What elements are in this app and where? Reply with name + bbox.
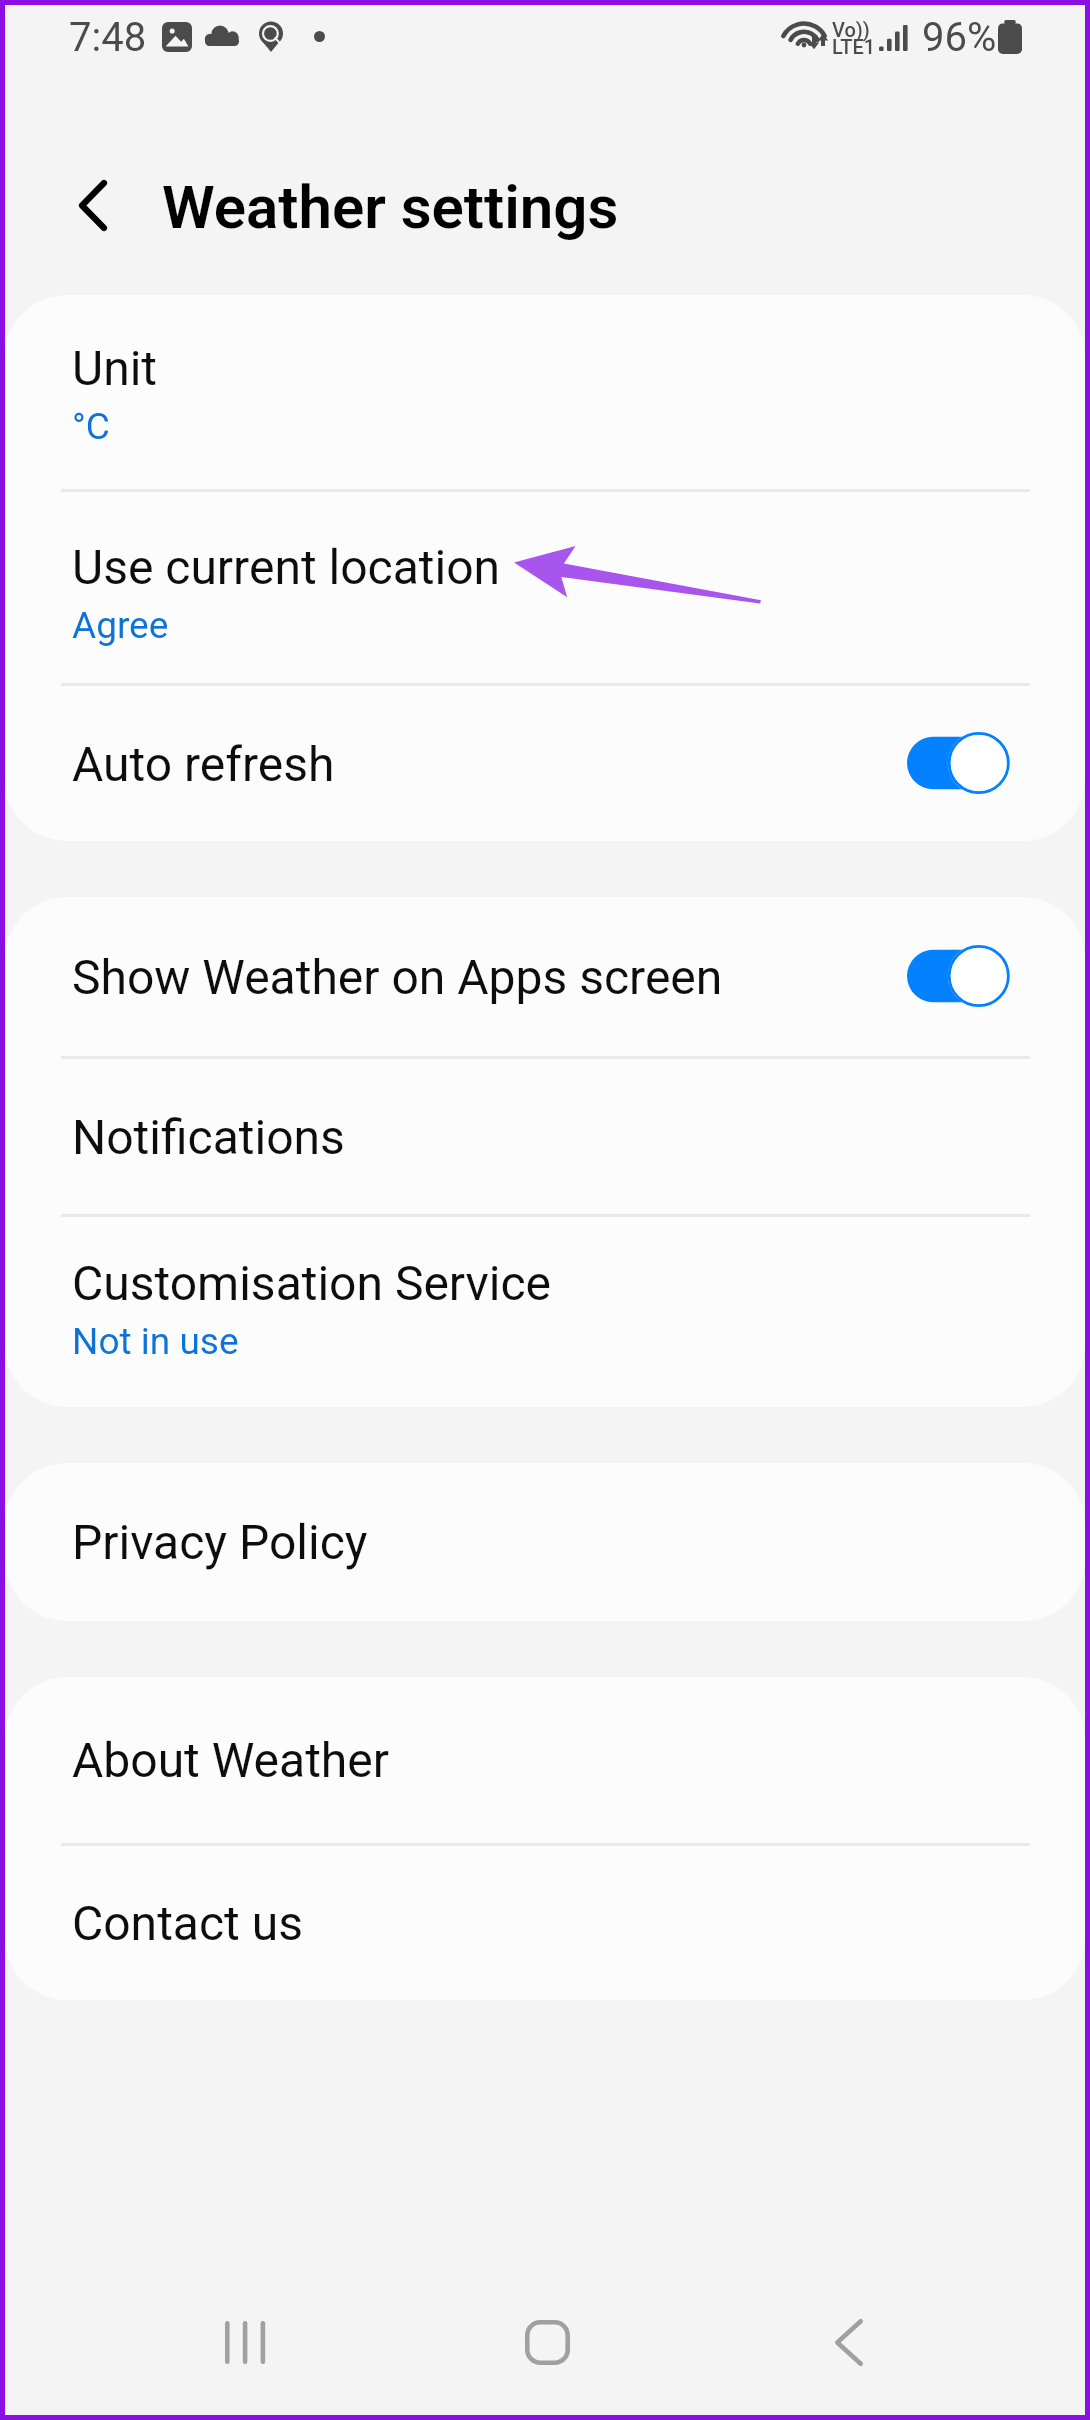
button[interactable]: About Weather	[5, 1677, 1085, 1843]
staticText: Vo))	[832, 18, 870, 41]
button[interactable]: Unit	[5, 295, 1085, 489]
staticText: Notifications	[72, 1109, 345, 1165]
staticText: Customisation Service	[72, 1255, 552, 1311]
staticText: Weather settings	[162, 172, 619, 242]
staticText: 96%	[922, 14, 997, 61]
button[interactable]: Back	[52, 155, 134, 255]
button[interactable]: Customisation Service	[5, 1217, 1085, 1407]
staticText: Privacy Policy	[72, 1514, 368, 1570]
button[interactable]: Recents	[155, 2269, 335, 2415]
button[interactable]: Contact us	[5, 1846, 1085, 2000]
staticText: About Weather	[72, 1732, 389, 1788]
button[interactable]: Use current location	[5, 492, 1085, 683]
staticText: Use current location	[72, 539, 501, 595]
button[interactable]: Back	[759, 2269, 939, 2415]
staticText: Agree	[72, 604, 169, 647]
button[interactable]: Notifications	[5, 1059, 1085, 1214]
staticText: Auto refresh	[72, 736, 907, 792]
staticText: °C	[72, 405, 110, 448]
staticText: Contact us	[72, 1895, 303, 1951]
staticText: 7:48	[69, 14, 147, 61]
staticText: Unit	[72, 340, 158, 396]
staticText: Not in use	[72, 1320, 239, 1363]
button[interactable]: Privacy Policy	[5, 1463, 1085, 1621]
button[interactable]: Auto refresh	[5, 686, 1085, 841]
button[interactable]: Show Weather on Apps screen	[5, 897, 1085, 1056]
staticText: LTE1	[832, 35, 876, 58]
staticText: Show Weather on Apps screen	[72, 949, 907, 1005]
button[interactable]: Home	[457, 2269, 637, 2415]
